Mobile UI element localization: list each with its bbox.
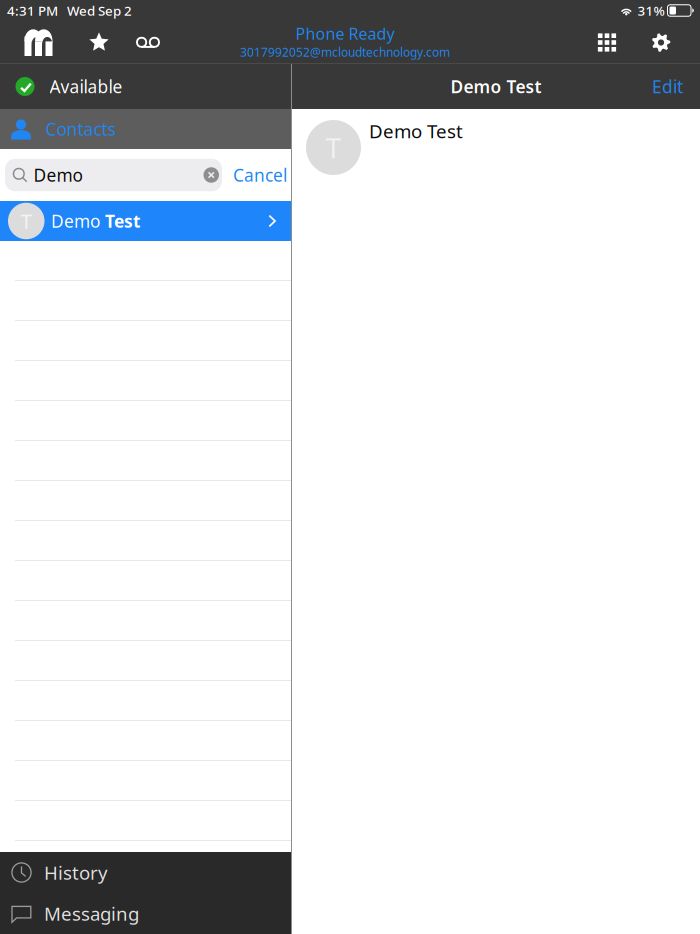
button[interactable]: T: [0, 201, 291, 241]
button[interactable]: Voicemail: [126, 21, 170, 64]
staticText: Available: [49, 75, 122, 98]
staticText: Wed Sep 2: [67, 2, 132, 19]
button[interactable]: Clear search: [203, 167, 222, 183]
button[interactable]: Cancel: [222, 154, 294, 196]
button[interactable]: Available: [0, 64, 291, 109]
button[interactable]: Messaging: [0, 893, 291, 934]
staticText: Messaging: [44, 901, 139, 926]
staticText: Demo: [33, 163, 82, 186]
button[interactable]: Contacts: [0, 109, 291, 149]
staticText: Test: [105, 209, 141, 232]
button[interactable]: Favorites: [77, 21, 121, 64]
button[interactable]: History: [0, 852, 291, 893]
staticText: Cancel: [233, 163, 287, 186]
staticText: 31%: [637, 2, 664, 19]
staticText: 3017992052@mcloudtechnology.com: [240, 44, 450, 60]
button[interactable]: Settings: [639, 21, 683, 64]
button[interactable]: Edit: [652, 64, 700, 109]
staticText: History: [44, 860, 108, 885]
staticText: Demo Test: [450, 75, 541, 98]
staticText: Contacts: [45, 117, 115, 140]
staticText: T: [325, 129, 341, 166]
staticText: Edit: [652, 75, 683, 98]
staticText: Demo Test: [369, 119, 463, 143]
button[interactable]: Keypad: [585, 21, 629, 64]
staticText: Demo: [51, 209, 105, 232]
staticText: 4:31 PM: [7, 2, 58, 19]
button[interactable]: Home: [14, 21, 63, 64]
staticText: T: [21, 208, 32, 234]
staticText: Phone Ready: [295, 23, 394, 44]
